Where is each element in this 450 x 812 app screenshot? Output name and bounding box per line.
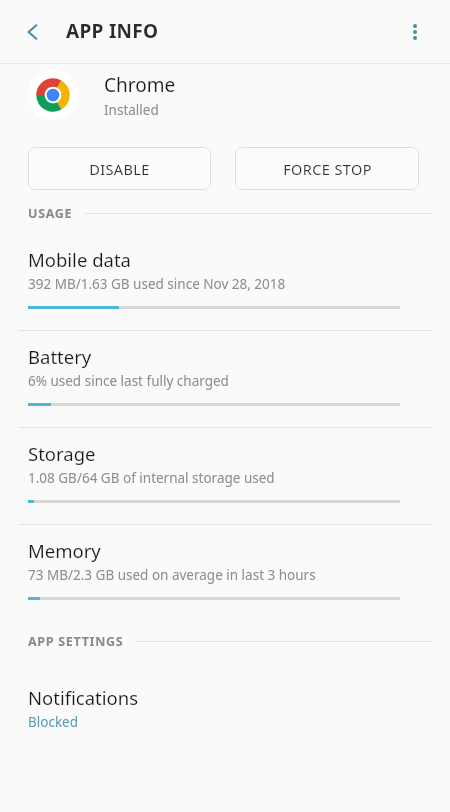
staticText: 392 MB/1.63 GB used since Nov 28, 2018 — [28, 275, 286, 293]
staticText: USAGE — [28, 205, 73, 222]
staticText: DISABLE — [89, 159, 150, 179]
button[interactable]: DISABLE — [28, 147, 211, 190]
button[interactable]: Storage — [0, 441, 450, 511]
button[interactable]: FORCE STOP — [235, 147, 419, 190]
staticText: Mobile data — [28, 247, 131, 272]
staticText: Installed — [104, 101, 159, 119]
staticText: Storage — [28, 441, 96, 466]
staticText: Battery — [28, 344, 92, 369]
button[interactable]: Back — [13, 12, 53, 52]
staticText: APP SETTINGS — [28, 633, 124, 650]
button[interactable]: Battery — [0, 344, 450, 414]
staticText: Chrome — [104, 72, 176, 98]
button[interactable]: Notifications — [0, 683, 450, 733]
staticText: 1.08 GB/64 GB of internal storage used — [28, 469, 275, 487]
staticText: Blocked — [28, 713, 79, 731]
button[interactable]: Mobile data — [0, 247, 450, 317]
staticText: APP INFO — [66, 18, 159, 44]
button[interactable]: More options — [397, 14, 433, 50]
staticText: Memory — [28, 538, 101, 563]
staticText: FORCE STOP — [283, 159, 372, 179]
staticText: Notifications — [28, 685, 139, 710]
button[interactable]: Chrome — [0, 64, 450, 126]
button[interactable]: Memory — [0, 538, 450, 608]
staticText: 73 MB/2.3 GB used on average in last 3 h… — [28, 566, 316, 584]
staticText: 6% used since last fully charged — [28, 372, 229, 390]
